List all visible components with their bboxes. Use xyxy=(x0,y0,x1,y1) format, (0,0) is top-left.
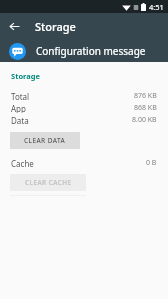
staticText: 0 B xyxy=(146,158,157,168)
staticText: App xyxy=(11,103,26,113)
staticText: CLEAR CACHE xyxy=(25,178,72,187)
button: CLEAR CACHE xyxy=(10,174,86,191)
staticText: 8.00 KB xyxy=(132,115,157,125)
staticText: 868 KB xyxy=(134,103,157,113)
staticText: 4:51 xyxy=(149,2,164,12)
staticText: Total xyxy=(11,91,30,101)
button[interactable]: Back xyxy=(4,16,25,37)
button[interactable]: CLEAR DATA xyxy=(10,132,80,149)
staticText: 876 KB xyxy=(134,91,157,101)
staticText: CLEAR DATA xyxy=(24,136,66,145)
staticText: Data xyxy=(11,115,29,125)
staticText: Storage xyxy=(11,71,40,81)
button[interactable]: Configuration message xyxy=(0,40,168,62)
staticText: Configuration message xyxy=(36,44,146,58)
staticText: Storage xyxy=(35,19,76,34)
staticText: Cache xyxy=(11,158,34,168)
